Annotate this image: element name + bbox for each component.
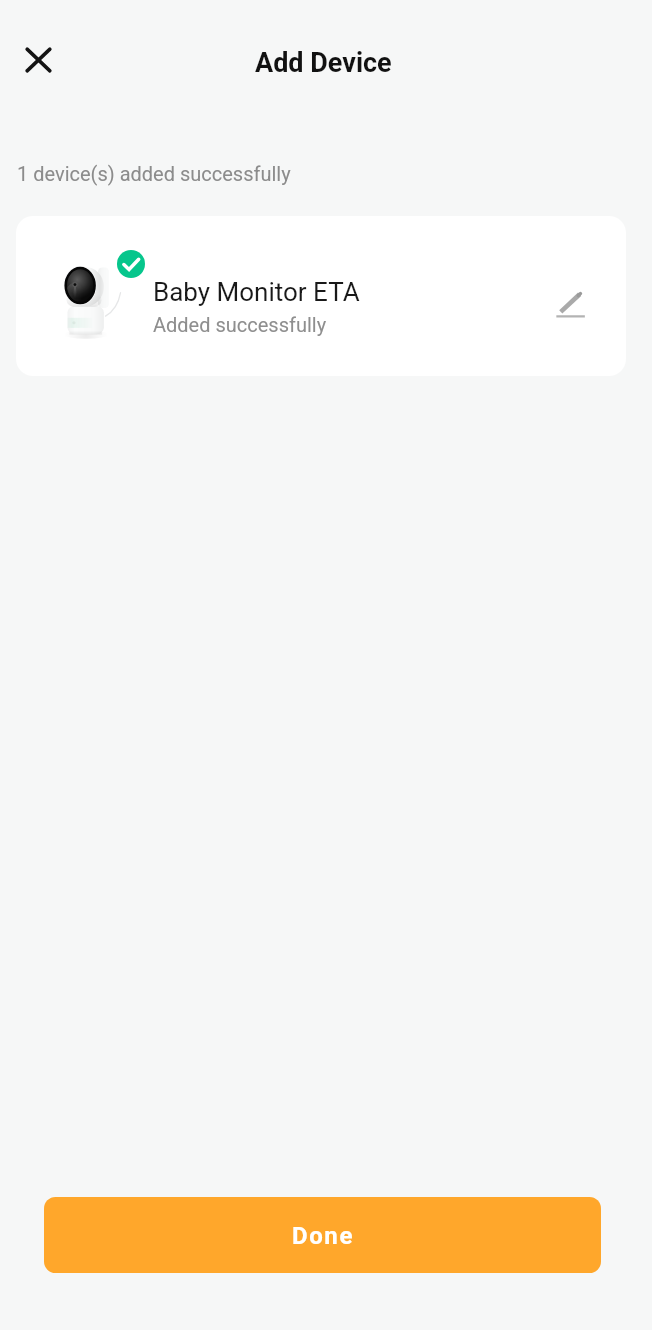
button[interactable]: Baby Monitor ETA xyxy=(16,216,626,376)
staticText: Add Device xyxy=(255,47,392,79)
staticText: Baby Monitor ETA xyxy=(153,277,360,307)
button[interactable]: Rename device xyxy=(544,278,596,330)
staticText: Done xyxy=(292,1222,354,1250)
button[interactable]: Close xyxy=(13,35,63,85)
button[interactable]: Done xyxy=(44,1197,601,1273)
staticText: 1 device(s) added successfully xyxy=(17,162,291,185)
staticText: Added successfully xyxy=(153,313,327,336)
